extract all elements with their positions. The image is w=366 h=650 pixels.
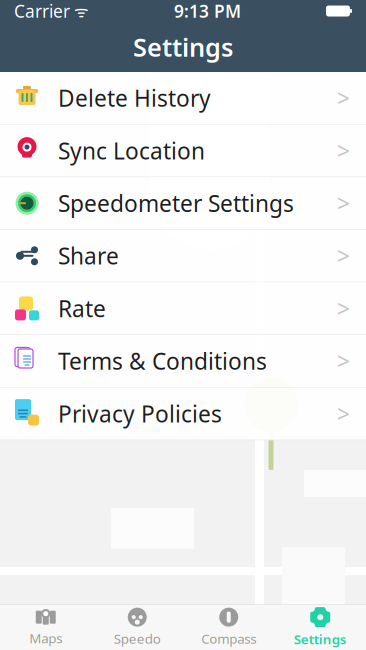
staticText: Terms & Conditions [58, 346, 267, 376]
button[interactable]: Compass [183, 603, 274, 650]
staticText: Delete History [58, 83, 211, 113]
button[interactable]: Maps [0, 603, 91, 650]
staticText: Sync Location [58, 135, 205, 166]
staticText: Privacy Policies [58, 398, 222, 429]
staticText: > [337, 241, 350, 271]
staticText: Compass [201, 630, 256, 647]
staticText: Rate [58, 293, 106, 323]
button[interactable]: Share [0, 230, 366, 282]
staticText: > [337, 83, 350, 113]
staticText: Speedometer Settings [58, 188, 294, 218]
button[interactable]: Privacy Policies [0, 388, 366, 440]
staticText: Carrier [14, 0, 70, 22]
staticText: Speedo [114, 630, 161, 647]
staticText: > [337, 398, 350, 429]
staticText: Settings [133, 30, 233, 64]
staticText: 9:13 PM [174, 0, 241, 22]
staticText: > [337, 346, 350, 376]
staticText: Settings [294, 630, 347, 648]
button[interactable]: Speedometer Settings [0, 177, 366, 230]
button[interactable]: Settings [274, 602, 366, 650]
button[interactable]: Terms & Conditions [0, 335, 366, 388]
button[interactable]: Speedo [91, 603, 183, 650]
staticText: ᯤ [70, 0, 89, 22]
staticText: Share [58, 241, 119, 271]
staticText: > [337, 188, 350, 218]
staticText: > [337, 293, 350, 323]
button[interactable]: Rate [0, 282, 366, 335]
staticText: Maps [29, 629, 62, 647]
button[interactable]: Sync Location [0, 125, 366, 177]
staticText: > [337, 135, 350, 166]
button[interactable]: Delete History [0, 72, 366, 125]
